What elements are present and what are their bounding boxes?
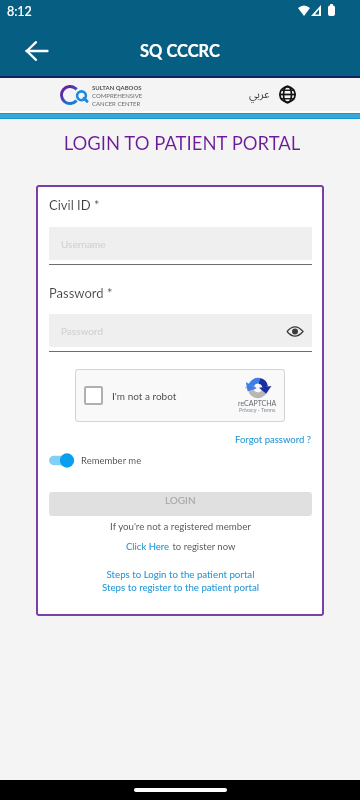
button[interactable]: Back [14,28,58,72]
button[interactable]: Show password [284,320,306,342]
staticText: Password [61,325,103,337]
button[interactable]: عربي [249,83,296,106]
staticText: to register now [170,541,236,552]
staticText: SULTAN QABOOS [92,84,142,91]
staticText: LOGIN TO PATIENT PORTAL [2,132,360,154]
button[interactable]: LOGIN [49,492,312,516]
staticText: 8:12 [7,4,32,19]
staticText: If you're not a registered member [49,520,312,532]
staticText: LOGIN [165,494,196,506]
staticText: I'm not a robot [112,390,177,402]
staticText: CANCER CENTER [92,100,141,107]
button[interactable]: I'm not a robot checkbox [84,386,103,405]
staticText: COMPREHENSIVE [92,92,143,99]
staticText: Civil ID * [49,197,100,213]
button[interactable]: Remember me [49,453,142,468]
staticText: Password * [49,285,113,301]
button[interactable]: Forgot password ? [235,434,312,445]
staticText: SQ CCCRC [140,41,220,61]
button[interactable]: Steps to Login to the patient portal Ste… [49,568,312,593]
staticText: Username [61,238,106,250]
staticText: Remember me [81,455,142,466]
staticText: reCAPTCHA [238,399,277,407]
staticText: عربي [249,83,270,106]
staticText: Privacy - Terms [239,407,276,414]
button[interactable]: Click Here [126,541,170,552]
